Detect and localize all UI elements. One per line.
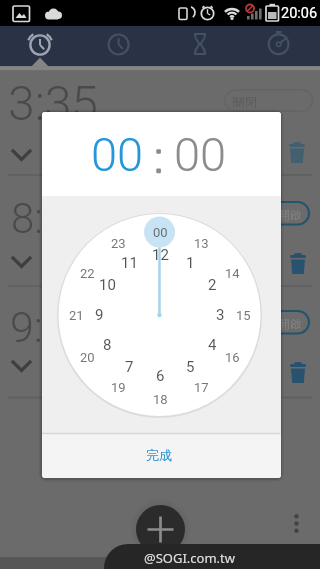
button[interactable]: 11 <box>109 253 149 273</box>
button[interactable]: 00 <box>140 222 180 242</box>
staticText: 7 <box>125 358 134 376</box>
button[interactable]: 23 <box>98 233 138 253</box>
button[interactable] <box>7 143 36 167</box>
staticText: 10 <box>99 276 116 294</box>
staticText: 12 <box>152 246 169 264</box>
button[interactable]: 16 <box>212 347 252 367</box>
staticText: 00 <box>153 225 168 240</box>
staticText: 2 <box>208 276 217 294</box>
button[interactable] <box>285 141 309 165</box>
button[interactable] <box>160 26 240 66</box>
button[interactable]: 6 <box>140 366 180 386</box>
staticText: 9 <box>95 306 104 324</box>
button[interactable] <box>240 26 320 66</box>
staticText: 1 <box>186 254 195 272</box>
button[interactable] <box>225 311 309 334</box>
staticText: 完成 <box>146 447 172 463</box>
staticText: 11 <box>121 254 138 272</box>
staticText: 9:00 <box>10 302 91 352</box>
button[interactable] <box>80 26 160 66</box>
staticText: 18 <box>153 392 168 407</box>
button[interactable]: 7 <box>109 357 149 377</box>
staticText: @SOGI.com.tw <box>144 549 235 567</box>
staticText: 6 <box>156 367 165 385</box>
button[interactable]: 3 <box>200 305 240 325</box>
staticText: 15 <box>236 308 251 323</box>
staticText: 22 <box>80 266 95 281</box>
button[interactable]: 5 <box>170 357 210 377</box>
staticText: 20 <box>80 350 95 365</box>
staticText: 14 <box>225 266 240 281</box>
button[interactable]: 9 <box>79 305 119 325</box>
staticText: 3 <box>216 306 225 324</box>
staticText: 8 <box>103 336 112 354</box>
staticText: 19 <box>111 380 126 395</box>
button[interactable]: 19 <box>98 377 138 397</box>
staticText: 21 <box>69 308 84 323</box>
staticText: 00 <box>91 127 144 182</box>
button[interactable] <box>225 90 313 111</box>
button[interactable]: 1 <box>170 253 210 273</box>
button[interactable]: 14 <box>212 263 252 283</box>
staticText: 13 <box>194 236 209 251</box>
button[interactable]: 13 <box>181 233 221 253</box>
button[interactable]: 完成 <box>119 440 199 470</box>
staticText: 開啟 <box>278 207 302 222</box>
button[interactable]: 17 <box>181 377 221 397</box>
button[interactable] <box>286 252 310 276</box>
staticText: 23 <box>111 236 126 251</box>
button[interactable]: 4 <box>192 335 232 355</box>
button[interactable]: 22 <box>67 263 107 283</box>
button[interactable]: 18 <box>140 389 180 409</box>
staticText: 16 <box>225 350 240 365</box>
staticText: 20:06 <box>281 5 318 22</box>
staticText: 00 <box>174 127 227 182</box>
staticText: 17 <box>194 380 209 395</box>
button[interactable] <box>7 250 36 274</box>
button[interactable]: 15 <box>223 305 263 325</box>
button[interactable] <box>136 505 185 554</box>
staticText: 8:30 <box>11 194 90 243</box>
button[interactable]: 21 <box>56 305 96 325</box>
staticText: 關閉 <box>233 94 257 109</box>
button[interactable]: 20 <box>67 347 107 367</box>
button[interactable]: 12 <box>140 245 180 265</box>
button[interactable] <box>225 202 309 225</box>
button[interactable]: 10 <box>87 275 127 295</box>
button[interactable]: 8 <box>87 335 127 355</box>
staticText: 開啟 <box>278 316 302 331</box>
button[interactable] <box>0 26 80 66</box>
staticText: 4 <box>208 336 217 354</box>
button[interactable]: 2 <box>192 275 232 295</box>
button[interactable] <box>286 361 310 385</box>
button[interactable] <box>7 354 36 378</box>
staticText: 3:35 <box>8 75 98 131</box>
staticText: 5 <box>186 358 195 376</box>
button[interactable] <box>284 508 309 539</box>
button[interactable] <box>42 434 281 478</box>
